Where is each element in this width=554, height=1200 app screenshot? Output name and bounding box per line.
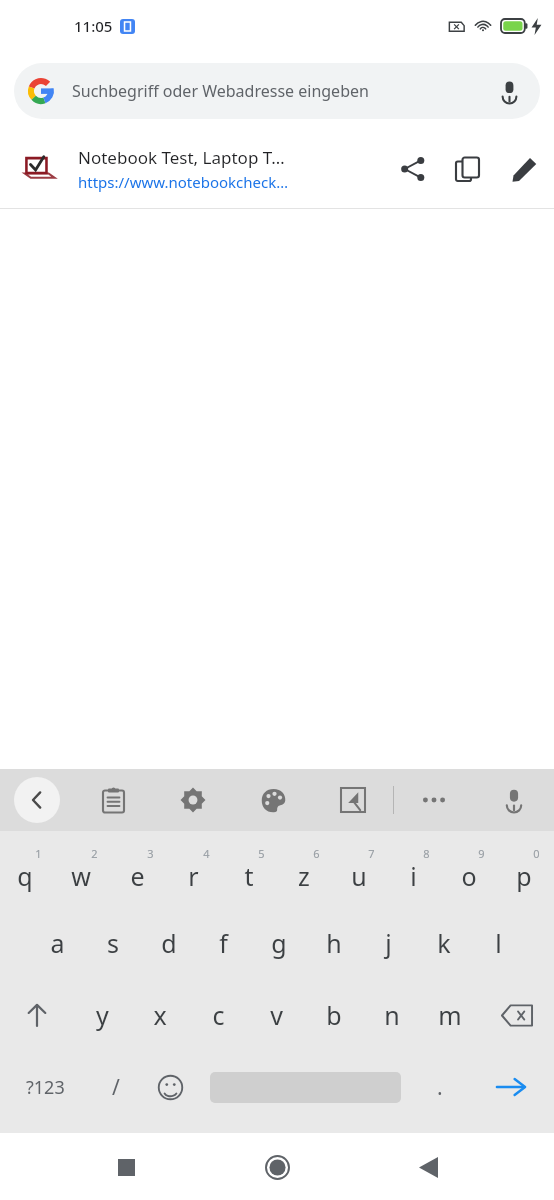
button[interactable]: f xyxy=(196,907,251,979)
button[interactable]: Theme xyxy=(233,769,313,831)
button[interactable]: u xyxy=(334,837,389,907)
staticText: n xyxy=(384,998,400,1032)
staticText: b xyxy=(326,998,342,1032)
button[interactable]: Copy xyxy=(440,142,494,196)
staticText: https://www.notebookcheck… xyxy=(78,172,289,192)
button[interactable]: z xyxy=(279,837,334,907)
staticText: l xyxy=(495,926,502,960)
button[interactable]: Edit xyxy=(494,139,554,199)
button[interactable]: r xyxy=(168,837,224,907)
staticText: 3 xyxy=(147,846,154,861)
button[interactable]: d xyxy=(141,907,196,979)
button[interactable]: g xyxy=(251,907,306,979)
button[interactable]: s xyxy=(85,907,141,979)
staticText: x xyxy=(153,998,167,1032)
button[interactable]: o xyxy=(444,837,499,907)
staticText: 11:05 xyxy=(74,16,113,36)
staticText: s xyxy=(107,926,119,960)
button[interactable]: Notebook Test, Laptop T… xyxy=(0,130,554,208)
button[interactable]: Resize xyxy=(313,769,393,831)
staticText: 5 xyxy=(258,846,265,861)
button[interactable]: Home xyxy=(248,1138,306,1196)
button[interactable]: Backspace xyxy=(479,979,554,1051)
button[interactable]: a xyxy=(29,907,85,979)
staticText: e xyxy=(130,859,145,893)
button[interactable]: Suchbegriff oder Webadresse eingeben xyxy=(14,63,540,119)
button[interactable]: b xyxy=(305,979,363,1051)
button[interactable]: Voice search xyxy=(492,74,526,108)
staticText: m xyxy=(438,998,462,1032)
staticText: q xyxy=(17,859,33,893)
button[interactable]: j xyxy=(361,907,416,979)
staticText: 2 xyxy=(91,846,98,861)
staticText: 0 xyxy=(533,846,540,861)
staticText: j xyxy=(385,926,392,960)
button[interactable]: v xyxy=(247,979,305,1051)
staticText: i xyxy=(410,859,417,893)
button[interactable]: e xyxy=(112,837,168,907)
button[interactable]: q xyxy=(0,837,56,907)
button[interactable]: n xyxy=(363,979,421,1051)
button[interactable]: x xyxy=(131,979,189,1051)
staticText: d xyxy=(161,926,177,960)
button[interactable]: Space xyxy=(199,1051,411,1123)
staticText: r xyxy=(188,859,199,893)
staticText: 7 xyxy=(368,846,375,861)
button[interactable]: i xyxy=(389,837,444,907)
button[interactable]: Settings xyxy=(153,769,233,831)
button[interactable]: Voice input xyxy=(474,769,554,831)
button[interactable]: Shift xyxy=(0,979,74,1051)
staticText: ?123 xyxy=(26,1075,65,1100)
button[interactable]: Back xyxy=(399,1138,457,1196)
staticText: 1 xyxy=(35,846,42,861)
staticText: o xyxy=(461,859,477,893)
button[interactable]: Share xyxy=(386,142,440,196)
button[interactable]: p xyxy=(499,837,554,907)
staticText: u xyxy=(351,859,367,893)
staticText: 6 xyxy=(313,846,320,861)
button[interactable]: k xyxy=(416,907,471,979)
staticText: p xyxy=(516,859,532,893)
button[interactable]: c xyxy=(189,979,247,1051)
staticText: / xyxy=(112,1073,120,1102)
staticText: h xyxy=(326,926,342,960)
button[interactable]: m xyxy=(421,979,479,1051)
staticText: Notebook Test, Laptop T… xyxy=(78,146,285,169)
staticText: c xyxy=(212,998,225,1032)
button[interactable]: w xyxy=(56,837,112,907)
button[interactable]: l xyxy=(471,907,526,979)
button[interactable]: Go xyxy=(468,1051,554,1123)
button[interactable]: h xyxy=(306,907,361,979)
button[interactable]: More options xyxy=(394,769,474,831)
button[interactable]: t xyxy=(224,837,279,907)
staticText: 8 xyxy=(423,846,430,861)
staticText: v xyxy=(270,998,283,1032)
staticText: f xyxy=(219,926,228,960)
button[interactable]: Recent apps xyxy=(97,1138,155,1196)
button[interactable]: Emoji xyxy=(142,1051,199,1123)
staticText: w xyxy=(71,859,91,893)
button[interactable]: Clipboard xyxy=(74,769,153,831)
button[interactable]: . xyxy=(411,1051,468,1123)
staticText: 4 xyxy=(203,846,210,861)
staticText: a xyxy=(50,926,65,960)
button[interactable]: / xyxy=(90,1051,142,1123)
staticText: t xyxy=(244,859,254,893)
staticText: k xyxy=(437,926,451,960)
staticText: y xyxy=(96,998,109,1032)
staticText: Suchbegriff oder Webadresse eingeben xyxy=(72,80,492,102)
staticText: 9 xyxy=(478,846,485,861)
staticText: . xyxy=(437,1073,443,1102)
staticText: z xyxy=(298,859,310,893)
staticText: g xyxy=(271,926,287,960)
button[interactable]: Back xyxy=(14,777,60,823)
button[interactable]: ?123 xyxy=(0,1051,90,1123)
button[interactable]: y xyxy=(74,979,131,1051)
